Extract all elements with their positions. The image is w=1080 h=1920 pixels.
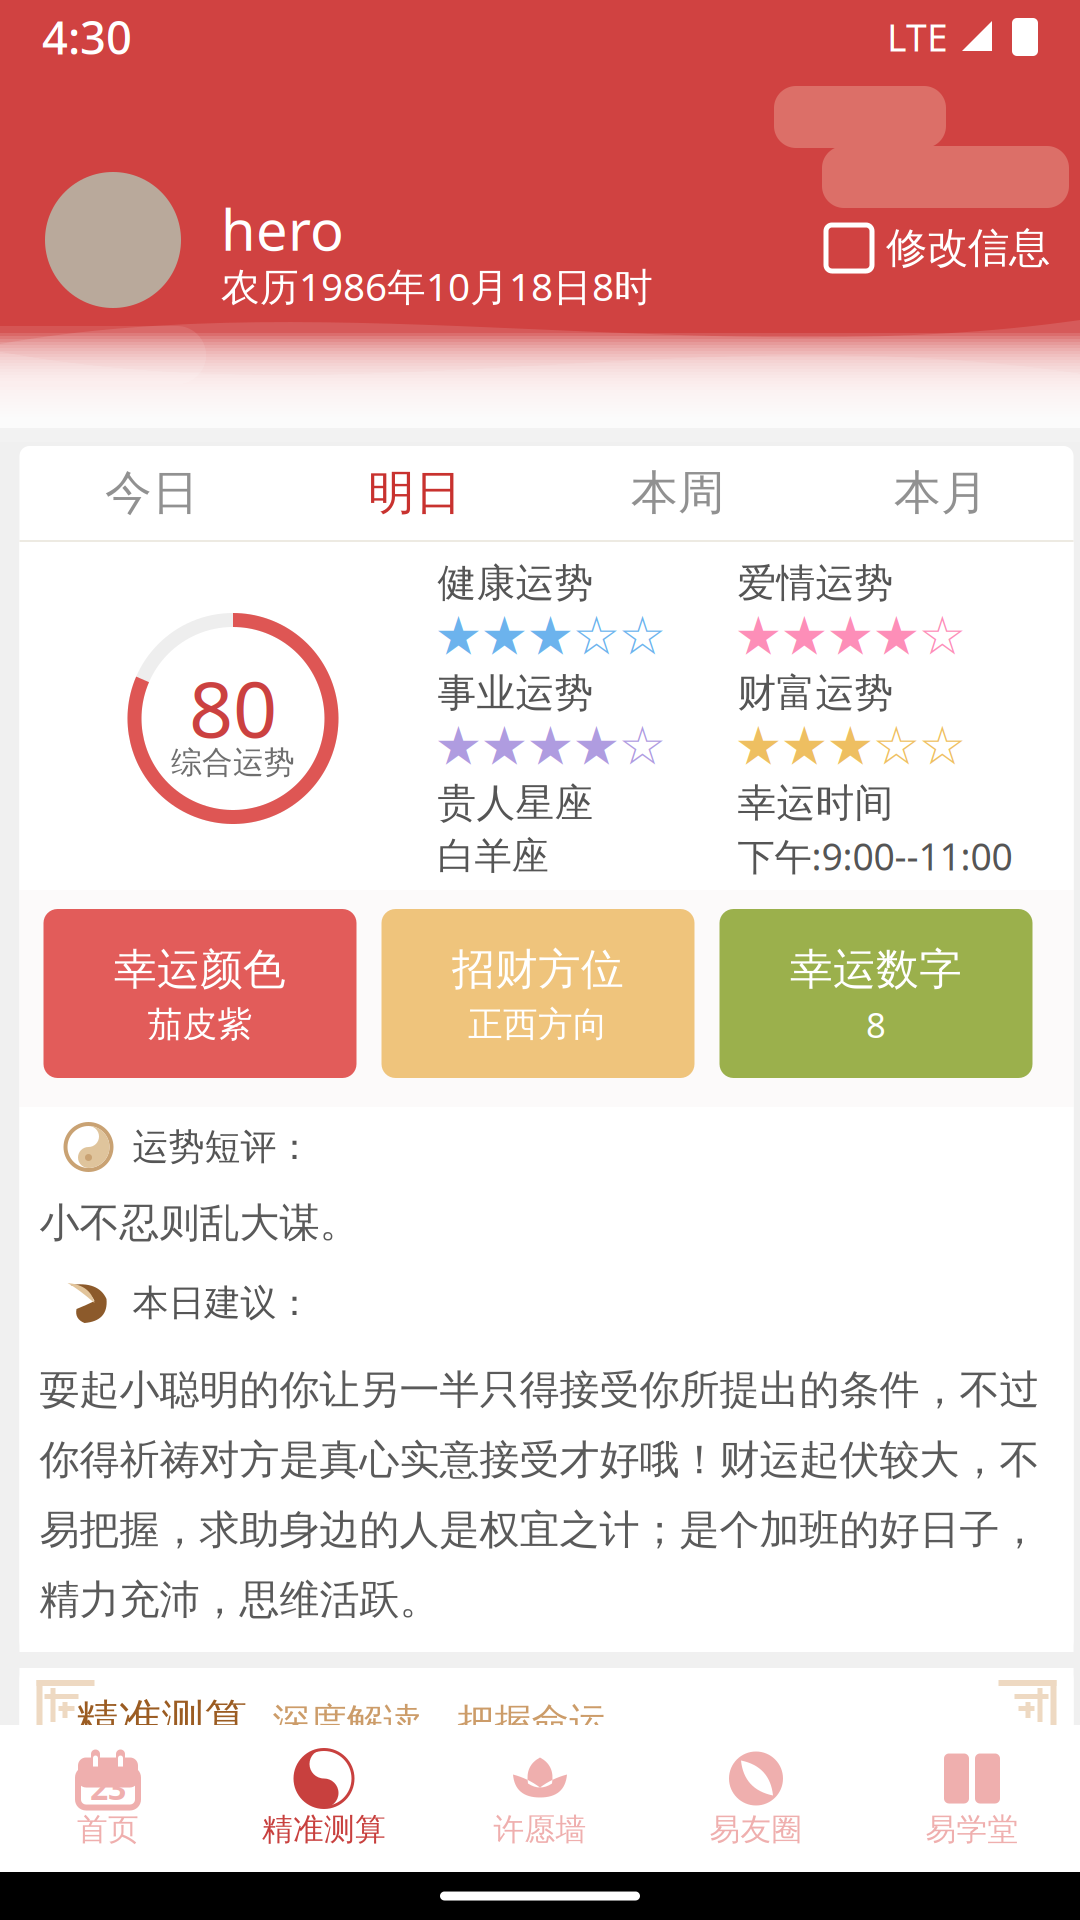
staticText: LTE [887,12,948,62]
button[interactable]: 本月 [809,446,1072,540]
staticText: 首页 [77,1811,139,1848]
staticText: 幸运数字 [790,943,962,996]
staticText: 精力充沛，思维活跃。 [39,1575,439,1624]
staticText: 4:30 [42,7,132,67]
staticText: 明日 [368,464,462,522]
staticText: ★ [572,716,620,776]
button[interactable]: 许愿墙 [432,1740,648,1856]
button[interactable]: 易友圈 [648,1740,864,1856]
staticText: 事业运势 [437,669,593,717]
staticText: ☆ [872,716,920,776]
button[interactable]: 明日 [283,446,546,540]
button[interactable]: 易学堂 [864,1740,1080,1856]
staticText: 运势短评： [132,1125,312,1169]
staticText: 爱情运势 [737,559,893,607]
staticText: 8 [866,1001,886,1047]
staticText: 耍起小聪明的你让另一半只得接受你所提出的条件，不过 [39,1365,1039,1414]
button[interactable]: 招财方位 [381,909,694,1078]
button[interactable]: 幸运颜色 [43,909,356,1078]
staticText: 财富运势 [737,669,893,717]
button[interactable]: 修改信息 [826,218,1054,278]
staticText: 小不忍则乱大谋。 [39,1198,359,1247]
staticText: 正西方向 [468,1003,608,1046]
staticText: hero [221,192,344,266]
staticText: 精准测算 [75,1694,247,1746]
staticText: ★ [480,716,528,776]
staticText: 白羊座 [437,833,548,879]
staticText: 贵人星座 [437,779,593,827]
staticText: ☆ [618,716,666,776]
staticText: 23 [90,1766,126,1809]
staticText: 综合运势 [171,744,295,781]
staticText: 茄皮紫 [147,1003,252,1046]
staticText: ★ [780,606,828,666]
staticText: ★ [434,606,482,666]
staticText: ☆ [918,716,966,776]
staticText: 精准测算 [262,1811,386,1848]
staticText: 农历1986年10月18日8时 [221,260,653,312]
staticText: 幸运颜色 [114,943,286,996]
staticText: ☆ [618,606,666,666]
staticText: 易友圈 [709,1811,802,1848]
staticText: 下午:9:00--11:00 [737,831,1012,881]
staticText: ★ [734,606,782,666]
button[interactable]: 幸运数字 [719,909,1032,1078]
staticText: ☆ [572,606,620,666]
staticText: 深度解读，把握命运 [272,1699,605,1745]
staticText: 本日建议： [132,1281,312,1325]
button[interactable]: 今日 [20,446,283,540]
staticText: ★ [780,716,828,776]
staticText: 许愿墙 [493,1811,586,1848]
staticText: ★ [480,606,528,666]
staticText: 易学堂 [925,1811,1018,1848]
staticText: 本周 [631,464,725,522]
staticText: ★ [826,716,874,776]
staticText: 易把握，求助身边的人是权宜之计；是个加班的好日子， [39,1505,1039,1554]
button[interactable]: 精准测算 [19,1668,1073,1858]
staticText: ★ [734,716,782,776]
button[interactable]: 本周 [546,446,809,540]
staticText: ★ [526,716,574,776]
staticText: 你得祈祷对方是真心实意接受才好哦！财运起伏较大，不 [39,1435,1039,1484]
staticText: ★ [434,716,482,776]
staticText: ★ [826,606,874,666]
button[interactable]: 23 [0,1740,216,1856]
staticText: 修改信息 [886,223,1050,273]
staticText: 本月 [894,464,988,522]
staticText: ☆ [918,606,966,666]
staticText: 招财方位 [452,943,624,996]
staticText: 健康运势 [437,559,593,607]
staticText: 80 [189,656,277,759]
staticText: ★ [872,606,920,666]
staticText: 幸运时间 [737,779,893,827]
staticText: 今日 [105,464,199,522]
staticText: ★ [526,606,574,666]
button[interactable]: 精准测算 [216,1740,432,1856]
